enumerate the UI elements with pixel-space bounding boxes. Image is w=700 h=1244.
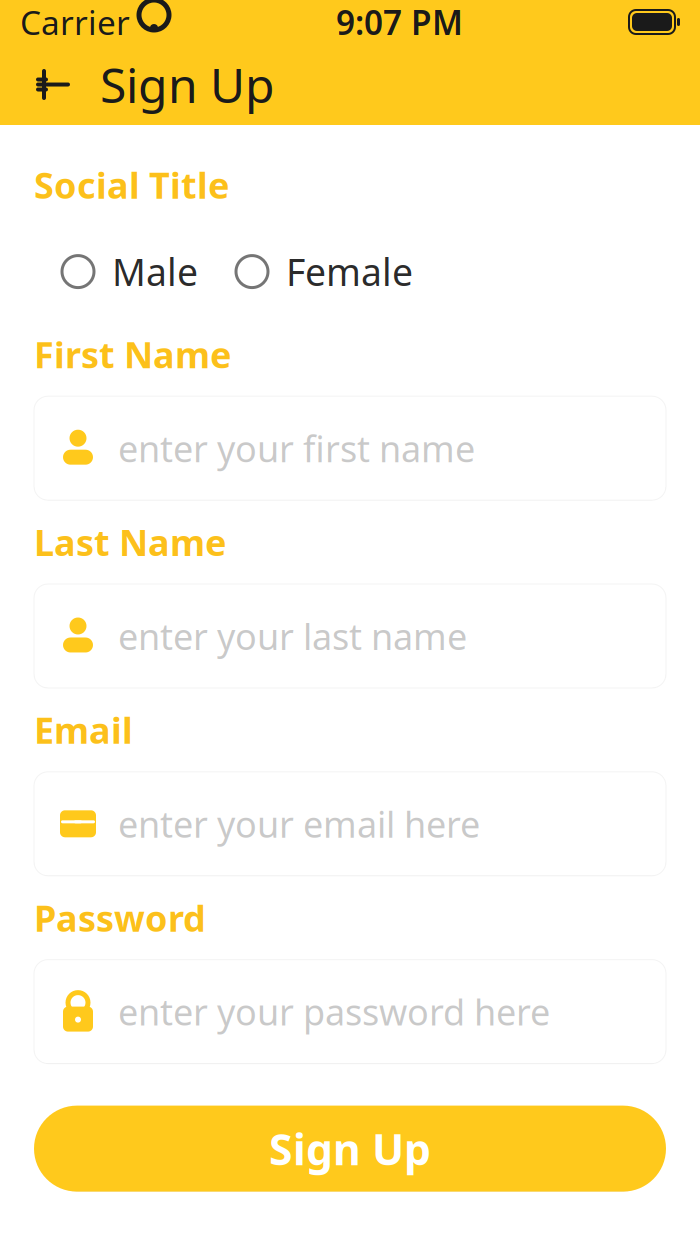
button[interactable]: Sign Up xyxy=(34,1106,666,1192)
staticText: Sign Up xyxy=(269,1120,431,1177)
staticText: Carrier xyxy=(20,0,130,44)
button[interactable]: Back xyxy=(18,49,88,119)
button[interactable]: enter your email here xyxy=(34,772,666,876)
staticText: Password xyxy=(34,894,206,942)
staticText: 9:07 PM xyxy=(336,0,463,44)
button[interactable]: enter your last name xyxy=(34,584,666,688)
staticText: Last Name xyxy=(34,518,226,566)
staticText: enter your last name xyxy=(118,612,467,660)
staticText: enter your email here xyxy=(118,800,480,848)
staticText: Email xyxy=(34,706,133,754)
staticText: Sign Up xyxy=(100,53,275,116)
staticText: Female xyxy=(286,247,413,296)
staticText: enter your password here xyxy=(118,988,550,1035)
button[interactable]: Female xyxy=(232,247,417,296)
button[interactable]: enter your password here xyxy=(34,960,666,1064)
staticText: Social Title xyxy=(34,161,229,209)
button[interactable]: enter your first name xyxy=(34,396,666,500)
staticText: Male xyxy=(112,247,198,296)
staticText: First Name xyxy=(34,330,231,378)
button[interactable]: Male xyxy=(58,247,202,296)
staticText: enter your first name xyxy=(118,424,475,472)
